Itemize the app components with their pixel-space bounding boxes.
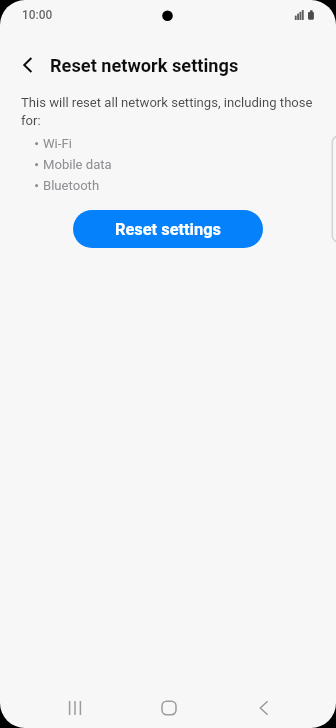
- button[interactable]: Recent apps: [51, 684, 99, 728]
- button[interactable]: Navigate up: [6, 43, 50, 87]
- staticText: Bluetooth: [43, 178, 100, 193]
- button[interactable]: Back: [240, 684, 288, 728]
- staticText: Reset settings: [115, 220, 221, 239]
- staticText: for:: [21, 113, 41, 128]
- staticText: 10:00: [22, 8, 53, 22]
- button[interactable]: Reset settings: [73, 210, 263, 248]
- staticText: Mobile data: [43, 157, 112, 172]
- button[interactable]: Home: [145, 684, 193, 728]
- staticText: Reset network settings: [50, 55, 239, 76]
- staticText: This will reset all network settings, in…: [21, 95, 313, 110]
- staticText: Wi-Fi: [43, 136, 72, 151]
